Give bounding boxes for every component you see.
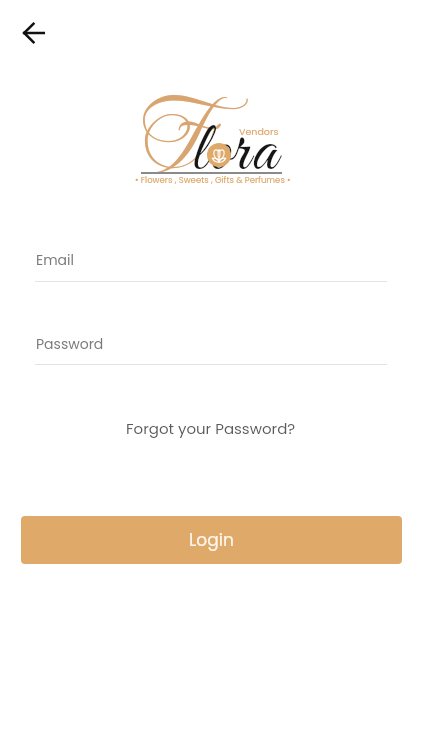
staticText: Email (36, 250, 74, 270)
button[interactable]: Forgot your Password? (116, 412, 306, 445)
staticText: Password (36, 334, 104, 354)
button[interactable]: Password (35, 327, 387, 367)
staticText: Login (189, 528, 234, 552)
button[interactable]: Email (35, 243, 387, 283)
staticText: Vendors (239, 125, 279, 138)
button[interactable]: Back (12, 11, 56, 55)
staticText: lora (192, 109, 280, 197)
staticText: Forgot your Password? (126, 418, 296, 439)
staticText: F (142, 81, 211, 186)
staticText: • Flowers , Sweets , Gifts & Perfumes • (135, 174, 291, 186)
button[interactable]: Login (21, 516, 402, 564)
